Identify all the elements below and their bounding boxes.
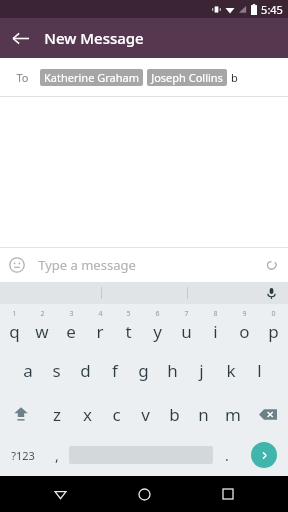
button[interactable]: h — [158, 348, 187, 392]
button[interactable]: d — [71, 348, 100, 392]
staticText: l — [257, 359, 262, 382]
button[interactable]: 0 — [259, 304, 288, 348]
staticText: 7 — [184, 309, 189, 319]
staticText: p — [268, 320, 279, 343]
button[interactable]: b — [160, 392, 189, 436]
button[interactable]: m — [218, 392, 247, 436]
button[interactable]: g — [129, 348, 158, 392]
staticText: v — [141, 403, 150, 426]
staticText: w — [35, 320, 49, 343]
button[interactable]: . — [213, 436, 240, 474]
staticText: . — [225, 446, 229, 465]
staticText: o — [239, 320, 250, 343]
staticText: q — [9, 320, 20, 343]
button[interactable]: 8 — [201, 304, 230, 348]
staticText: 3 — [69, 309, 74, 319]
staticText: 0 — [271, 309, 276, 319]
staticText: j — [199, 359, 204, 382]
button[interactable]: Back — [36, 476, 84, 512]
button[interactable]: x — [72, 392, 102, 436]
button[interactable]: 3 — [56, 304, 85, 348]
button[interactable]: 6 — [143, 304, 172, 348]
staticText: 2 — [40, 309, 45, 319]
button[interactable]: c — [102, 392, 131, 436]
button[interactable]: s — [42, 348, 71, 392]
staticText: Katherine Graham — [44, 70, 139, 85]
staticText: x — [83, 403, 92, 426]
button[interactable]: Emoji — [0, 248, 34, 282]
staticText: k — [226, 359, 236, 382]
staticText: i — [213, 320, 218, 343]
button[interactable]: l — [245, 348, 274, 392]
staticText: 6 — [155, 309, 160, 319]
button[interactable]: Back — [0, 18, 40, 58]
button[interactable]: Backspace — [247, 392, 288, 436]
staticText: f — [112, 359, 118, 382]
staticText: h — [167, 359, 178, 382]
staticText: 8 — [213, 309, 218, 319]
staticText: t — [125, 320, 132, 343]
button[interactable]: Home — [120, 476, 168, 512]
staticText: b — [231, 70, 238, 85]
button[interactable]: f — [100, 348, 129, 392]
button[interactable]: 1 — [0, 304, 28, 348]
staticText: z — [53, 403, 61, 426]
button[interactable]: , — [45, 436, 69, 474]
staticText: r — [96, 320, 104, 343]
staticText: To — [16, 70, 29, 85]
staticText: y — [153, 320, 162, 343]
staticText: m — [225, 403, 241, 426]
staticText: b — [169, 403, 180, 426]
button[interactable]: Shift — [0, 392, 42, 436]
staticText: New Message — [44, 28, 144, 48]
staticText: 5 — [126, 309, 131, 319]
staticText: 4 — [98, 309, 103, 319]
staticText: s — [52, 359, 61, 382]
button[interactable]: Send — [251, 442, 277, 468]
staticText: e — [66, 320, 76, 343]
button[interactable]: ?123 — [0, 436, 45, 474]
button[interactable]: Voice input — [254, 282, 288, 304]
staticText: , — [55, 446, 59, 465]
staticText: d — [80, 359, 91, 382]
button[interactable]: v — [131, 392, 160, 436]
staticText: Joseph Collins — [151, 70, 223, 85]
button[interactable]: 4 — [85, 304, 114, 348]
staticText: 5:45 — [261, 2, 283, 17]
staticText: ?123 — [11, 448, 35, 463]
staticText: c — [112, 403, 121, 426]
staticText: 1 — [12, 309, 17, 319]
button[interactable]: Katherine Graham — [40, 69, 143, 86]
button[interactable]: Joseph Collins — [147, 69, 227, 86]
button[interactable]: 9 — [230, 304, 259, 348]
button[interactable]: z — [42, 392, 72, 436]
button[interactable]: Recents — [204, 476, 252, 512]
staticText: n — [198, 403, 209, 426]
staticText: u — [181, 320, 192, 343]
button[interactable]: k — [216, 348, 245, 392]
button[interactable]: j — [187, 348, 216, 392]
staticText: Type a message — [38, 256, 136, 274]
button[interactable]: 2 — [28, 304, 56, 348]
button[interactable]: Attach — [254, 248, 288, 282]
button[interactable]: n — [189, 392, 218, 436]
button[interactable]: a — [14, 348, 42, 392]
staticText: a — [23, 359, 33, 382]
button[interactable]: 5 — [114, 304, 143, 348]
staticText: g — [138, 359, 149, 382]
staticText: 9 — [242, 309, 247, 319]
button[interactable]: 7 — [172, 304, 201, 348]
